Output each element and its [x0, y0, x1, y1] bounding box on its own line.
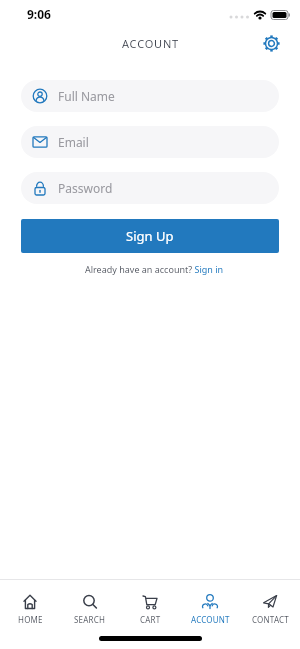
staticText: Full Name — [58, 88, 115, 104]
staticText: CONTACT — [252, 614, 289, 625]
button[interactable]: ACCOUNT — [180, 594, 240, 625]
staticText: Sign Up — [126, 227, 174, 245]
button[interactable]: CONTACT — [240, 594, 300, 625]
button[interactable]: Sign Up — [21, 219, 279, 253]
staticText: Password — [58, 180, 113, 196]
staticText: Already have an account? Sign in — [85, 263, 224, 275]
button[interactable]: SEARCH — [60, 594, 120, 625]
button[interactable]: Password — [21, 172, 279, 204]
button[interactable]: HOME — [0, 594, 60, 625]
staticText: CART — [140, 614, 161, 625]
staticText: Email — [58, 134, 89, 150]
staticText: SEARCH — [74, 614, 106, 625]
button[interactable]: Already have an account? Sign in — [30, 263, 279, 275]
button[interactable]: Full Name — [21, 80, 279, 112]
staticText: HOME — [18, 614, 43, 625]
button[interactable]: CART — [120, 594, 180, 625]
button[interactable]: Email — [21, 126, 279, 158]
staticText: 9:06 — [27, 6, 51, 22]
staticText: ACCOUNT — [122, 36, 179, 51]
staticText: ACCOUNT — [191, 614, 230, 625]
button[interactable] — [261, 33, 281, 53]
